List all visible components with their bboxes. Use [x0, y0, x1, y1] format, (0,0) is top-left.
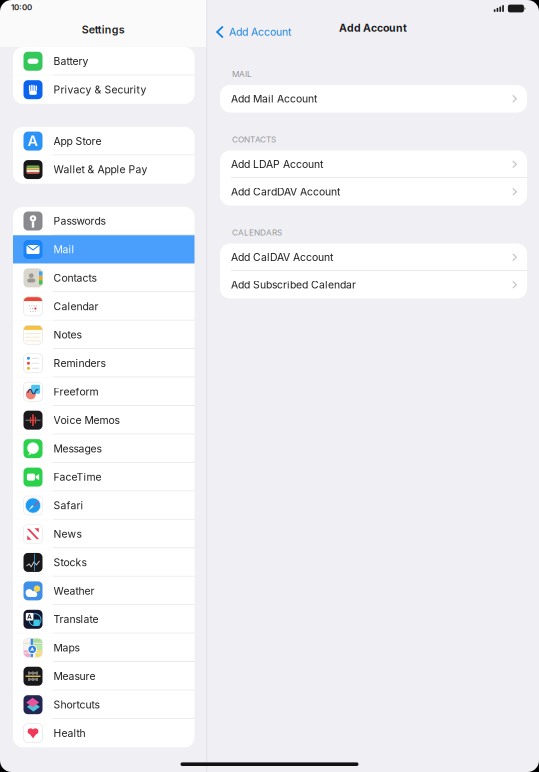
button[interactable]: Calendar — [13, 292, 194, 320]
button[interactable]: Add LDAP Account — [220, 150, 527, 178]
button[interactable]: Battery — [13, 47, 194, 75]
staticText: A — [27, 132, 38, 150]
button[interactable]: Add Mail Account — [220, 85, 527, 112]
staticText: CALENDARS — [232, 227, 282, 237]
staticText: Settings — [82, 23, 125, 36]
staticText: Shortcuts — [53, 698, 99, 711]
button[interactable]: Contacts — [13, 264, 194, 292]
button[interactable]: Add CardDAV Account — [220, 178, 527, 205]
staticText: News — [53, 528, 81, 540]
staticText: App Store — [53, 135, 101, 147]
button[interactable]: Maps — [13, 633, 194, 662]
staticText: CONTACTS — [232, 134, 276, 144]
button[interactable]: Weather — [13, 577, 194, 605]
staticText: Battery — [53, 55, 88, 67]
staticText: Notes — [53, 328, 81, 341]
staticText: Mail — [53, 243, 74, 256]
button[interactable]: Privacy & Security — [13, 75, 194, 104]
button[interactable]: Passwords — [13, 207, 194, 235]
staticText: Stocks — [53, 556, 86, 569]
button[interactable]: Add CalDAV Account — [220, 243, 527, 271]
button[interactable]: Reminders — [13, 349, 194, 377]
staticText: Privacy & Security — [53, 83, 146, 96]
staticText: Wallet & Apple Pay — [53, 163, 147, 176]
staticText: Contacts — [53, 272, 96, 284]
staticText: Add CalDAV Account — [231, 251, 333, 264]
button[interactable]: Shortcuts — [13, 690, 194, 719]
button[interactable]: Mail — [13, 235, 194, 264]
button[interactable]: A — [13, 127, 194, 155]
button[interactable]: Wallet & Apple Pay — [13, 155, 194, 184]
button[interactable]: Freeform — [13, 377, 194, 406]
staticText: Add Mail Account — [231, 92, 317, 105]
button[interactable]: Measure — [13, 662, 194, 690]
staticText: Add LDAP Account — [231, 158, 323, 171]
button[interactable]: Messages — [13, 434, 194, 463]
button[interactable]: Safari — [13, 491, 194, 520]
button[interactable]: FaceTime — [13, 463, 194, 491]
staticText: Add Subscribed Calendar — [231, 278, 356, 291]
button[interactable]: Add Account — [207, 21, 297, 42]
staticText: Health — [53, 727, 85, 739]
button[interactable]: Voice Memos — [13, 406, 194, 434]
staticText: Add Account — [229, 26, 291, 38]
staticText: Voice Memos — [53, 414, 119, 426]
staticText: Messages — [53, 442, 101, 455]
button[interactable]: Notes — [13, 321, 194, 349]
button[interactable]: News — [13, 520, 194, 548]
button[interactable]: Stocks — [13, 548, 194, 577]
button[interactable]: Add Subscribed Calendar — [220, 271, 527, 298]
staticText: Safari — [53, 499, 83, 512]
staticText: Weather — [53, 585, 94, 597]
staticText: FaceTime — [53, 471, 101, 483]
staticText: 10:00 — [11, 3, 32, 12]
staticText: Measure — [53, 670, 95, 682]
staticText: Translate — [53, 613, 98, 626]
staticText: Freeform — [53, 385, 98, 398]
staticText: Passwords — [53, 215, 105, 227]
staticText: Calendar — [53, 300, 98, 313]
staticText: Add Account — [339, 21, 407, 34]
staticText: A — [27, 613, 32, 621]
staticText: MAIL — [232, 69, 252, 79]
staticText: Add CardDAV Account — [231, 185, 340, 198]
staticText: Reminders — [53, 357, 105, 370]
staticText: Maps — [53, 641, 79, 654]
button[interactable]: Health — [13, 719, 194, 747]
button[interactable]: A — [13, 605, 194, 633]
